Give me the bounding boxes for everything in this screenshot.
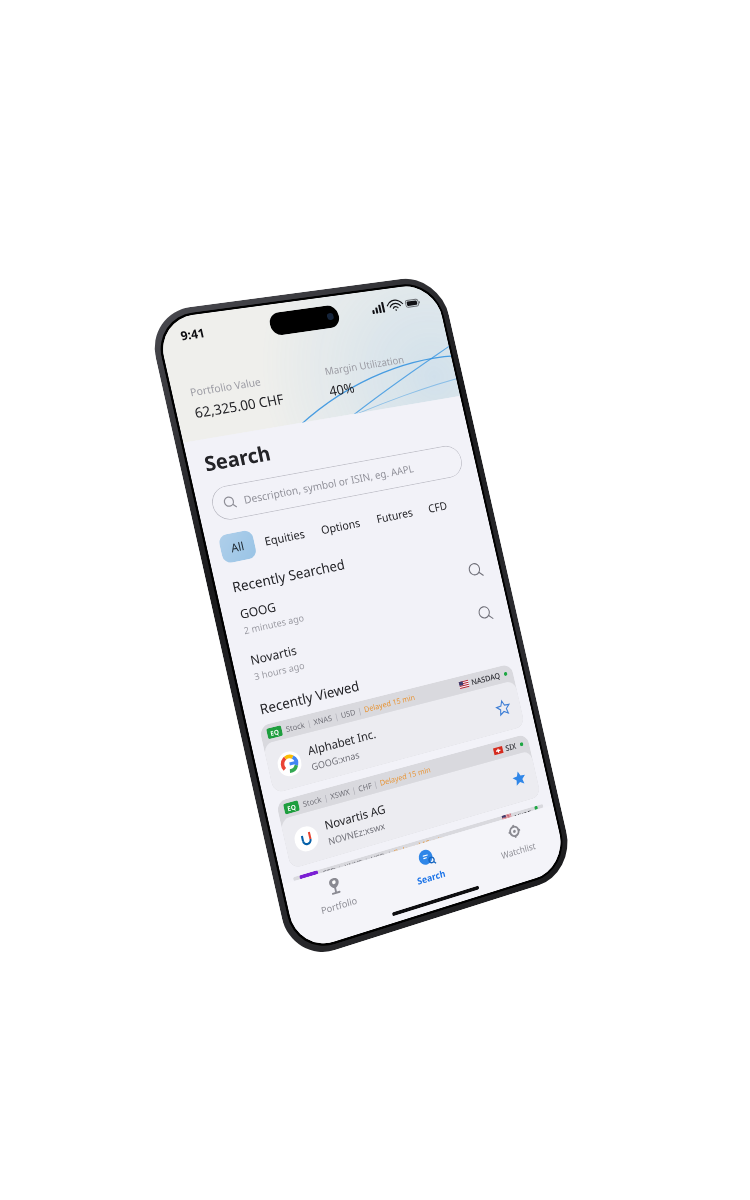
button[interactable]: CFD xyxy=(293,804,544,881)
staticText: GOOG xyxy=(238,598,278,622)
button[interactable]: Equities xyxy=(254,518,314,557)
staticText: | xyxy=(331,710,342,723)
staticText: Margin Utilization xyxy=(323,352,405,378)
button[interactable]: Watchlist xyxy=(467,805,564,878)
staticText: 40% xyxy=(327,378,356,400)
staticText: | xyxy=(321,791,331,804)
other: Search Novartis xyxy=(476,604,495,624)
button[interactable]: Remove from watchlist xyxy=(508,766,530,791)
staticText: GOOG:xnas xyxy=(310,748,361,774)
staticText: Recently Viewed xyxy=(258,676,361,719)
staticText: | xyxy=(355,704,365,717)
button[interactable]: Search xyxy=(378,830,478,906)
button[interactable]: Novartis xyxy=(230,590,512,691)
staticText: USD xyxy=(370,850,386,858)
staticText: Delayed 15 min xyxy=(379,764,432,788)
staticText: CFD xyxy=(302,872,315,878)
staticText: | xyxy=(304,717,315,730)
staticText: | xyxy=(349,784,359,796)
staticText: Stock xyxy=(285,719,306,735)
button[interactable]: EQ xyxy=(259,663,525,794)
button[interactable]: Portfolio xyxy=(283,857,389,935)
other: Search GOOG xyxy=(466,561,485,581)
staticText: Delayed 15 min xyxy=(393,833,445,852)
staticText: Stock xyxy=(302,794,323,809)
staticText: | xyxy=(362,855,371,861)
staticText: XNYS xyxy=(344,857,363,866)
staticText: CFD xyxy=(321,865,336,873)
staticText: Description, symbol or ISIN, eg. AAPL xyxy=(242,461,415,507)
staticText: All xyxy=(229,538,246,556)
staticText: Futures xyxy=(375,504,414,526)
staticText: Novartis xyxy=(249,641,298,668)
staticText: Recently Searched xyxy=(230,555,346,597)
staticText: | xyxy=(385,848,394,854)
staticText: Alphabet Inc. xyxy=(306,725,377,759)
staticText: | xyxy=(371,778,381,790)
staticText: SIX xyxy=(504,740,518,754)
staticText: Delayed 15 min xyxy=(363,692,416,715)
staticText: NOVNEz:xswx xyxy=(327,819,386,848)
staticText: XSWX xyxy=(329,786,351,802)
staticText: Equities xyxy=(263,526,306,549)
staticText: Search xyxy=(201,438,273,477)
staticText: | xyxy=(335,862,344,869)
staticText: USD xyxy=(340,707,357,721)
button[interactable]: Add to watchlist xyxy=(492,696,514,720)
staticText: Portfolio Value xyxy=(188,374,262,400)
button[interactable]: Futures xyxy=(367,497,422,534)
staticText: 62,325.00 CHF xyxy=(193,389,286,422)
button[interactable]: Description, symbol or ISIN, eg. AAPL xyxy=(209,443,465,523)
staticText: NASDAQ xyxy=(470,669,502,687)
staticText: Portfolio xyxy=(320,894,358,918)
staticText: 9:41 xyxy=(179,324,206,344)
staticText: 2 minutes ago xyxy=(242,611,306,637)
staticText: XNAS xyxy=(312,712,334,727)
staticText: Options xyxy=(319,515,362,537)
staticText: CFD xyxy=(427,498,449,516)
button[interactable]: GOOG xyxy=(220,548,503,645)
staticText: Search xyxy=(416,867,447,888)
button[interactable]: EQ xyxy=(276,734,541,869)
button[interactable]: All xyxy=(217,529,258,564)
button[interactable]: Options xyxy=(311,507,370,545)
staticText: EQ xyxy=(269,727,280,738)
staticText: NYSE xyxy=(513,807,531,816)
staticText: 3 hours ago xyxy=(253,659,306,683)
staticText: CHF xyxy=(357,780,373,794)
button[interactable]: CFD xyxy=(419,490,456,523)
staticText: EQ xyxy=(286,802,297,813)
staticText: Watchlist xyxy=(500,840,537,862)
staticText: Novartis AG xyxy=(323,800,387,833)
